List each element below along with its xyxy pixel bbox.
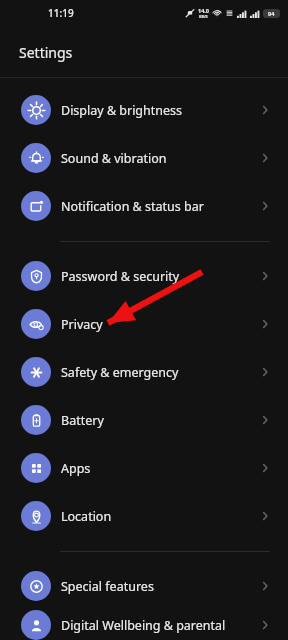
staticText: Notification & status bar	[61, 198, 258, 215]
staticText: Special features	[61, 578, 258, 595]
button[interactable]: Battery	[0, 396, 288, 444]
button[interactable]: Location	[0, 492, 288, 540]
staticText: Apps	[61, 460, 258, 477]
button[interactable]: Notification & status bar	[0, 182, 288, 230]
button[interactable]: Display & brightness	[0, 86, 288, 134]
button[interactable]: Password & security	[0, 252, 288, 300]
staticText: Privacy	[61, 316, 258, 333]
staticText: Sound & vibration	[61, 150, 258, 167]
staticText: Display & brightness	[61, 102, 258, 119]
staticText: Digital Wellbeing & parental	[61, 617, 258, 634]
button[interactable]: Digital Wellbeing & parental	[0, 610, 288, 640]
staticText: 14.0	[198, 7, 209, 14]
staticText: Password & security	[61, 268, 258, 285]
button[interactable]: Privacy	[0, 300, 288, 348]
staticText: 94	[268, 10, 275, 17]
staticText: Safety & emergency	[61, 364, 258, 381]
button[interactable]: Apps	[0, 444, 288, 492]
button[interactable]: Special features	[0, 562, 288, 610]
staticText: Location	[61, 508, 258, 525]
staticText: Settings	[19, 43, 73, 62]
button[interactable]: Safety & emergency	[0, 348, 288, 396]
staticText: Battery	[61, 412, 258, 429]
button[interactable]: Sound & vibration	[0, 134, 288, 182]
staticText: 11:19	[48, 6, 74, 20]
staticText: KB/S	[199, 14, 208, 19]
